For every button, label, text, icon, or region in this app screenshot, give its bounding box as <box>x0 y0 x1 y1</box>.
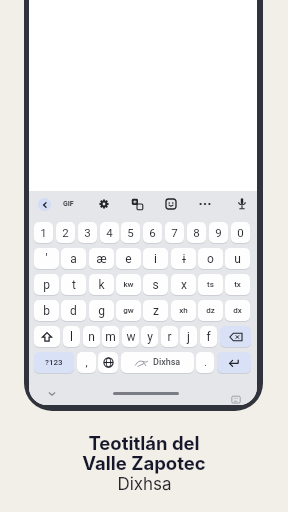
staticText: g <box>98 304 105 318</box>
button[interactable]: y <box>141 326 158 347</box>
button[interactable]: g <box>89 300 114 321</box>
staticText: dx <box>233 306 242 315</box>
button[interactable]: 2 <box>56 222 75 243</box>
staticText: i <box>154 252 157 266</box>
staticText: s <box>152 278 159 292</box>
button[interactable] <box>34 326 60 347</box>
button[interactable]: o <box>198 248 223 269</box>
button[interactable]: i <box>143 248 168 269</box>
button[interactable]: b <box>34 300 59 321</box>
staticText: x <box>181 278 187 292</box>
staticText: y <box>147 330 153 344</box>
staticText: æ <box>96 252 107 266</box>
staticText: dz <box>206 306 215 315</box>
button[interactable]: 4 <box>100 222 119 243</box>
staticText: GIF <box>63 200 74 208</box>
staticText: 8 <box>193 226 200 239</box>
button[interactable]: gw <box>116 300 141 321</box>
staticText: xh <box>179 306 188 315</box>
staticText: e <box>125 252 132 266</box>
button[interactable] <box>165 198 177 210</box>
staticText: . <box>204 356 207 369</box>
button[interactable] <box>130 197 144 211</box>
button[interactable]: j <box>180 326 197 347</box>
staticText: Teotitlán del Valle Zapotec <box>82 432 206 474</box>
button[interactable]: ?123 <box>34 352 74 373</box>
button[interactable]: 8 <box>187 222 206 243</box>
button[interactable]: x <box>171 274 196 295</box>
staticText: j <box>187 330 190 344</box>
staticText: 9 <box>215 226 222 239</box>
staticText: a <box>70 252 77 266</box>
button[interactable]: 6 <box>143 222 162 243</box>
staticText: k <box>98 278 105 292</box>
button[interactable]: 1 <box>34 222 53 243</box>
button[interactable]: l <box>63 326 80 347</box>
button[interactable]: r <box>161 326 178 347</box>
staticText: l <box>70 330 73 344</box>
button[interactable]: , <box>77 352 96 373</box>
button[interactable]: . <box>196 352 214 373</box>
staticText: t <box>72 278 76 292</box>
button[interactable]: ɨ <box>171 248 196 269</box>
button[interactable]: f <box>200 326 217 347</box>
button[interactable]: Dixhsa <box>121 352 194 373</box>
button[interactable]: dx <box>225 300 250 321</box>
button[interactable] <box>98 198 110 210</box>
button[interactable] <box>236 197 248 211</box>
button[interactable]: p <box>34 274 59 295</box>
staticText: 1 <box>40 226 47 239</box>
staticText: gw <box>123 306 134 315</box>
button[interactable]: tx <box>225 274 250 295</box>
button[interactable]: 0 <box>231 222 250 243</box>
button[interactable]: w <box>122 326 139 347</box>
button[interactable]: a <box>61 248 86 269</box>
button[interactable]: xh <box>171 300 196 321</box>
button[interactable]: t <box>61 274 86 295</box>
button[interactable]: e <box>116 248 141 269</box>
staticText: Dixhsa <box>153 357 181 368</box>
button[interactable] <box>217 352 251 373</box>
staticText: kw <box>123 280 134 289</box>
button[interactable]: 9 <box>209 222 228 243</box>
button[interactable]: GIF <box>59 196 77 212</box>
button[interactable]: ' <box>34 248 59 269</box>
button[interactable]: æ <box>89 248 114 269</box>
staticText: b <box>43 304 50 318</box>
button[interactable]: 3 <box>78 222 97 243</box>
staticText: 5 <box>127 226 134 239</box>
staticText: ' <box>45 252 48 266</box>
button[interactable] <box>220 326 251 347</box>
button[interactable]: ts <box>198 274 223 295</box>
button[interactable]: 7 <box>165 222 184 243</box>
button[interactable]: dz <box>198 300 223 321</box>
button[interactable]: z <box>143 300 168 321</box>
staticText: 7 <box>171 226 178 239</box>
staticText: ?123 <box>45 358 63 367</box>
staticText: d <box>70 304 77 318</box>
button[interactable]: m <box>102 326 119 347</box>
staticText: p <box>43 278 50 292</box>
button[interactable] <box>199 198 211 210</box>
staticText: 0 <box>237 226 244 239</box>
button[interactable] <box>98 352 118 373</box>
button[interactable]: u <box>225 248 250 269</box>
button[interactable]: k <box>89 274 114 295</box>
staticText: r <box>167 330 172 344</box>
staticText: Dixhsa <box>117 474 172 495</box>
staticText: 2 <box>62 226 69 239</box>
staticText: 4 <box>106 226 113 239</box>
staticText: ɨ <box>182 252 186 266</box>
staticText: ts <box>207 280 214 289</box>
button[interactable]: kw <box>116 274 141 295</box>
staticText: u <box>234 252 241 266</box>
button[interactable]: s <box>143 274 168 295</box>
button[interactable] <box>38 198 51 211</box>
staticText: o <box>207 252 214 266</box>
staticText: , <box>85 356 88 369</box>
staticText: f <box>206 330 211 344</box>
staticText: tx <box>234 280 241 289</box>
button[interactable]: d <box>61 300 86 321</box>
button[interactable]: n <box>83 326 100 347</box>
button[interactable]: 5 <box>121 222 140 243</box>
